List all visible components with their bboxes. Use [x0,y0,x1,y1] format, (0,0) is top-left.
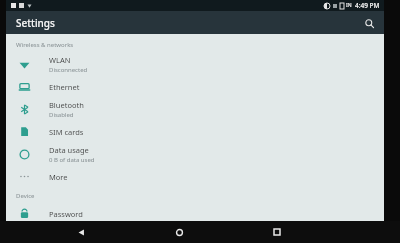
staticText: Device [16,192,35,200]
staticText: Disabled [49,111,74,119]
staticText: Bluetooth [49,100,84,110]
button[interactable]: Home [169,222,189,242]
staticText: Password [49,209,83,219]
staticText: IN [346,2,352,9]
button[interactable]: Bluetooth [6,97,384,121]
button[interactable]: More [6,166,384,187]
staticText: Settings [16,16,55,30]
button[interactable]: WLAN [6,52,384,76]
button[interactable]: Password [6,203,384,224]
button[interactable]: Ethernet [6,76,384,97]
staticText: Wireless & networks [16,41,74,49]
staticText: Disconnected [49,66,88,74]
staticText: SIM cards [49,127,84,137]
button[interactable]: Search [360,14,378,32]
button[interactable]: Back [71,222,91,242]
button[interactable]: Recent apps [267,222,287,242]
button[interactable]: SIM cards [6,121,384,142]
staticText: 4:49 PM [355,1,380,10]
staticText: WLAN [49,55,71,65]
button[interactable]: Data usage [6,142,384,166]
staticText: Data usage [49,145,89,155]
staticText: 0 B of data used [49,156,95,164]
staticText: Ethernet [49,82,80,92]
staticText: More [49,172,68,182]
